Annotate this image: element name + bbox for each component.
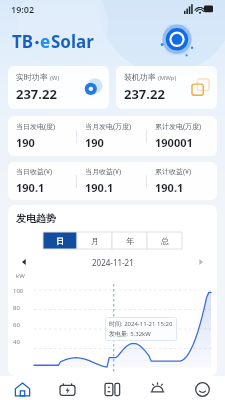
staticText: 237.22 (124, 85, 165, 103)
button[interactable]: 首页 (0, 381, 45, 400)
staticText: 190.1 (155, 180, 184, 195)
staticText: 190 (85, 135, 104, 150)
button[interactable]: 当月发电(万度) (77, 116, 147, 156)
staticText: 时间: 2024-11-21 15:20 (109, 320, 173, 328)
button[interactable]: Previous day (18, 256, 30, 268)
staticText: 60 (13, 321, 20, 329)
staticText: kW (16, 272, 25, 280)
staticText: 190 (16, 135, 35, 150)
staticText: 40 (13, 338, 20, 346)
staticText: 237.22 (16, 85, 57, 103)
staticText: 装机功率 (124, 72, 156, 82)
button[interactable]: 总 (147, 232, 182, 249)
staticText: 100 (13, 287, 24, 295)
button[interactable]: 告警 (135, 381, 180, 400)
staticText: 2024-11-21 (92, 257, 134, 268)
button[interactable]: 实时功率 (8, 66, 109, 109)
staticText: 190001 (155, 135, 193, 150)
staticText: 月 (91, 236, 99, 246)
staticText: 当日发电(度) (16, 122, 56, 132)
button[interactable]: 设备 (90, 381, 135, 400)
button[interactable]: 当月收益(¥) (77, 162, 147, 200)
button[interactable]: 月 (77, 232, 112, 249)
staticText: 当月收益(¥) (85, 167, 122, 177)
staticText: 80 (13, 304, 20, 312)
button[interactable]: 我的 (180, 381, 225, 400)
staticText: 当日收益(¥) (16, 167, 53, 177)
staticText: 19:02 (11, 3, 35, 15)
staticText: 累计发电(万度) (155, 122, 202, 132)
staticText: 发电趋势 (16, 212, 56, 225)
button[interactable]: 电站 (45, 381, 90, 400)
staticText: 年 (126, 236, 134, 246)
staticText: 日 (56, 236, 64, 246)
staticText: Solar (51, 30, 94, 53)
button[interactable]: 装机功率 (116, 66, 217, 109)
staticText: 累计收益(¥) (155, 167, 192, 177)
staticText: (MWp) (158, 74, 177, 82)
staticText: 当月发电(万度) (85, 122, 132, 132)
button[interactable]: 日 (43, 232, 77, 249)
staticText: 实时功率 (16, 72, 48, 82)
staticText: 190.1 (16, 180, 45, 195)
staticText: 190.1 (85, 180, 114, 195)
button[interactable]: 年 (112, 232, 147, 249)
button[interactable]: 当日发电(度) (8, 116, 77, 156)
button[interactable]: 当日收益(¥) (8, 162, 77, 200)
staticText: TB (12, 30, 34, 53)
staticText: (W) (50, 74, 60, 82)
button[interactable]: 累计发电(万度) (147, 116, 217, 156)
button[interactable]: 累计收益(¥) (147, 162, 217, 200)
staticText: 总 (161, 236, 169, 246)
button[interactable]: Next day (195, 256, 207, 268)
staticText: 发电量: 5.32kW (109, 330, 151, 338)
staticText: e (40, 30, 51, 53)
